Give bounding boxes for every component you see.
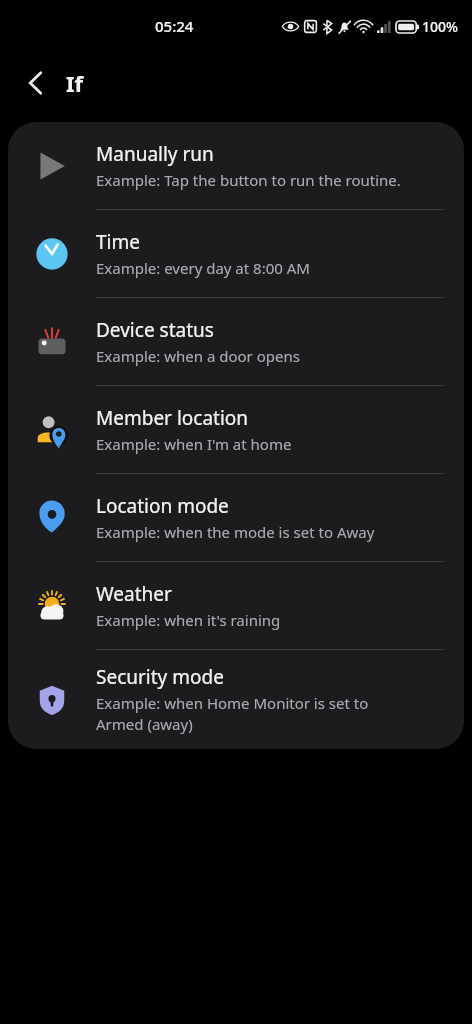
- staticText: Example: when it's raining: [96, 610, 281, 630]
- staticText: Device status: [96, 317, 214, 343]
- staticText: Time: [96, 229, 140, 255]
- staticText: Example: every day at 8:00 AM: [96, 258, 310, 278]
- button[interactable]: Security mode: [8, 650, 464, 749]
- staticText: Example: Tap the button to run the routi…: [96, 170, 401, 190]
- staticText: 05:24: [155, 16, 194, 36]
- button[interactable]: Member location: [8, 386, 464, 474]
- button[interactable]: Device status: [8, 298, 464, 386]
- staticText: Security mode: [96, 664, 224, 690]
- staticText: Location mode: [96, 493, 229, 519]
- staticText: Manually run: [96, 141, 214, 167]
- staticText: Example: when Home Monitor is set to Arm…: [96, 693, 369, 735]
- staticText: Example: when I'm at home: [96, 434, 292, 454]
- staticText: Example: when the mode is set to Away: [96, 522, 375, 542]
- staticText: Example: when a door opens: [96, 346, 300, 366]
- staticText: If: [66, 68, 84, 98]
- staticText: Weather: [96, 581, 172, 607]
- button[interactable]: Location mode: [8, 474, 464, 562]
- button[interactable]: Back: [14, 61, 58, 105]
- button[interactable]: Manually run: [8, 122, 464, 210]
- staticText: 100%: [422, 17, 458, 36]
- staticText: Member location: [96, 405, 249, 431]
- button[interactable]: Time: [8, 210, 464, 298]
- button[interactable]: Weather: [8, 562, 464, 650]
